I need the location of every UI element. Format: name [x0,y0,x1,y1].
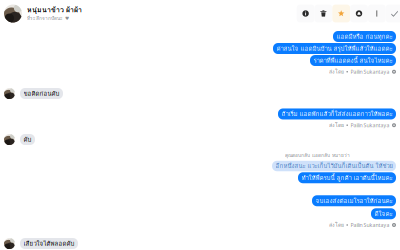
button[interactable]: ดีใจคะ [371,208,396,219]
staticText: คับ [23,135,31,143]
staticText: ราคาที่พี่แอดคงนี้ สนใจไหมคะ [313,56,392,64]
staticText: ขอคิดก่อนคับ [23,89,59,97]
staticText: จบเองส่งต่อเมโรอาให้ก่อนคะ [315,197,392,205]
staticText: คุณตอบกลับ แอดกลับ หมายว่า [285,152,350,159]
button[interactable]: ราคาที่พี่แอดคงนี้ สนใจไหมคะ [310,55,396,66]
staticText: ถ้าเริ่ม แอดพักแล้วก็ใส่ส่งแอดกาวให้พอคะ [281,110,392,118]
staticText: ค่าสนใจ แอดมินบ้าน สรุปให้พี่แล้วให้แอดค… [276,44,392,52]
button[interactable]: More [368,5,386,22]
staticText: เสียวใจได้พลอดคับ [23,239,74,247]
button[interactable]: ถ้าเริ่ม แอดพักแล้วก็ใส่ส่งแอดกาวให้พอคะ [278,108,396,119]
button[interactable]: อีกหนึ่งสนะ แวะเก็บไว้มันก็เดินเป็นต้น ใ… [272,161,396,171]
staticText: ส่งโดย [329,121,344,129]
button[interactable]: หนุ่มนาข้าว ผ้าผ้า [4,4,82,22]
button[interactable]: แอดมีหรือ ก่อนทุกคะ [333,31,396,42]
button[interactable]: Snooze [350,5,368,22]
button[interactable]: Details [297,5,314,22]
staticText: ที่ระลึกจากปัดนะ ♥ [27,15,69,22]
staticText: ดีใจคะ [374,210,392,218]
button[interactable]: Mark as done [386,5,400,22]
staticText: Pailin Sukantaya [350,69,389,75]
staticText: ส่งโดย [329,221,344,229]
staticText: แอดมีหรือ ก่อนทุกคะ [336,32,392,40]
button[interactable]: Delete [314,5,332,22]
button[interactable]: คับ [20,134,35,145]
staticText: Pailin Sukantaya [350,122,389,128]
staticText: Pailin Sukantaya [350,222,389,228]
button[interactable]: ขอคิดก่อนคับ [20,88,63,99]
button[interactable]: จบเองส่งต่อเมโรอาให้ก่อนคะ [312,195,396,206]
button[interactable]: Mark as favourite [332,5,350,22]
staticText: หนุ่มนาข้าว ผ้าผ้า [27,5,82,15]
staticText: ทำให้พี่ครบนี้ ลูกค้า เอาตันนี้ไหมคะ [301,174,392,182]
staticText: ส่งโดย [329,68,344,75]
button[interactable]: ทำให้พี่ครบนี้ ลูกค้า เอาตันนี้ไหมคะ [298,172,396,183]
staticText: อีกหนึ่งสนะ แวะเก็บไว้มันก็เดินเป็นต้น ใ… [275,162,392,170]
button[interactable]: เสียวใจได้พลอดคับ [20,238,78,249]
button[interactable]: ค่าสนใจ แอดมินบ้าน สรุปให้พี่แล้วให้แอดค… [273,43,396,54]
